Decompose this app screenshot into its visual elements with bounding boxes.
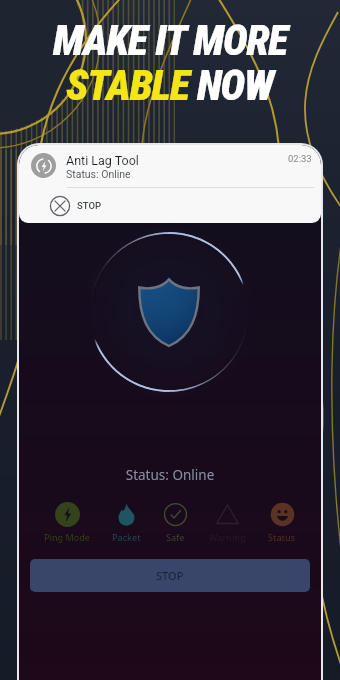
staticText: Warning xyxy=(209,531,246,543)
button[interactable]: Safe xyxy=(162,502,189,543)
staticText: NOW xyxy=(197,61,274,110)
button[interactable]: STOP xyxy=(30,559,310,592)
staticText: 02:33 xyxy=(288,153,312,164)
staticText: Ping Mode xyxy=(44,531,90,543)
staticText: STABLE xyxy=(66,61,197,110)
button[interactable]: Stop xyxy=(50,188,321,223)
button[interactable]: Warning xyxy=(208,502,247,543)
button[interactable]: Packet xyxy=(111,502,142,543)
staticText: STOP xyxy=(156,568,184,583)
staticText: Status: Online xyxy=(66,168,131,179)
staticText: Anti Lag Tool xyxy=(66,153,139,168)
staticText: Safe xyxy=(166,531,185,543)
staticText: STOP xyxy=(77,200,102,211)
button[interactable]: Status xyxy=(267,502,297,543)
other: Stop xyxy=(50,196,70,216)
button[interactable]: Ping Mode xyxy=(43,502,91,543)
staticText: Status xyxy=(268,531,296,543)
staticText: Status: Online xyxy=(19,466,321,484)
staticText: Packet xyxy=(112,531,141,543)
staticText: MAKE IT MORE xyxy=(0,16,340,65)
